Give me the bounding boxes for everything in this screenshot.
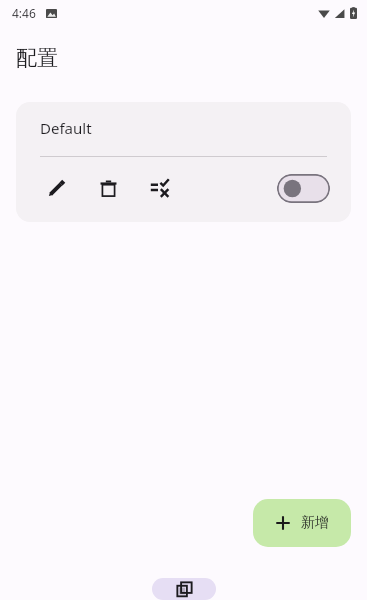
button[interactable]: 新增	[253, 499, 351, 547]
button[interactable]: Edit	[40, 172, 72, 204]
button[interactable]: Delete	[92, 172, 124, 204]
staticText: 配置	[16, 45, 58, 71]
button[interactable]: Rules	[144, 172, 176, 204]
button[interactable]: Default	[16, 102, 351, 222]
staticText: Default	[40, 118, 92, 138]
button[interactable]: Configurations	[152, 578, 216, 600]
button[interactable]: Toggle configuration	[277, 174, 330, 203]
staticText: 新增	[301, 514, 329, 532]
staticText: 4:46	[12, 5, 36, 21]
